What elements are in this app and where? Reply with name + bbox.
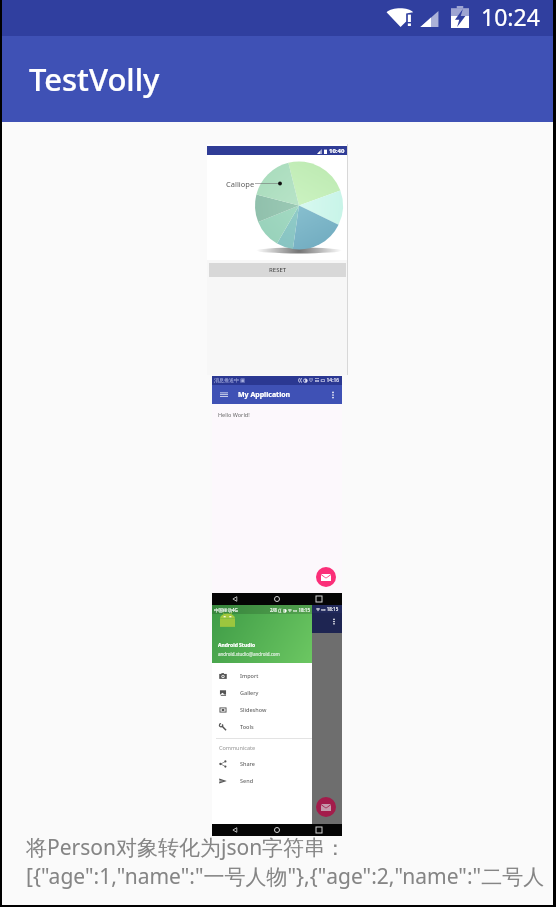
button[interactable]: Import — [212, 667, 312, 684]
staticText: ᯤ ▭ 18:15 — [316, 606, 339, 612]
other: Recents — [316, 827, 322, 833]
staticText: Tools — [240, 723, 254, 730]
staticText: RESET — [269, 266, 287, 274]
staticText: My Application — [238, 390, 291, 400]
staticText: TestVolly — [29, 58, 160, 100]
other: Recents — [316, 596, 322, 602]
staticText: Send — [240, 777, 254, 784]
staticText: 2/8 ⟨⟨ ◑ ᯤ ▭ 18:15 — [270, 607, 310, 613]
other: Home — [274, 827, 280, 833]
button[interactable]: RESET — [209, 263, 346, 277]
staticText: 将Person对象转化为json字符串： — [26, 833, 347, 862]
other: Menu — [220, 391, 228, 398]
button[interactable]: TestVolly — [2, 36, 553, 122]
other: Home — [274, 596, 280, 602]
staticText: Gallery — [240, 689, 259, 696]
staticText: android.studio@android.com — [218, 651, 280, 657]
button[interactable]: Gallery — [212, 684, 312, 701]
button[interactable]: Slideshow — [212, 701, 312, 718]
staticText: Communicate — [219, 744, 256, 751]
button[interactable]: Email — [316, 797, 336, 817]
staticText: Calliope — [226, 179, 255, 189]
button[interactable]: Send — [212, 772, 312, 789]
button[interactable]: Tools — [212, 718, 312, 735]
staticText: 消息推送中 ▣ — [214, 377, 246, 384]
staticText: Import — [240, 672, 259, 679]
other: More options — [333, 618, 335, 625]
staticText: Android Studio — [218, 642, 256, 649]
staticText: Slideshow — [240, 706, 267, 713]
other: Back — [232, 596, 238, 602]
other: Back — [232, 827, 238, 833]
staticText: Hello World! — [218, 411, 250, 418]
staticText: Share — [240, 760, 255, 767]
other: More options — [332, 391, 334, 399]
staticText: [{"age":1,"name":"一号人物"},{"age":2,"name"… — [26, 862, 545, 891]
staticText: 10:24 — [481, 1, 540, 32]
button[interactable]: Email — [316, 567, 336, 587]
staticText: ⟨⟨ ◑ ♡ ☷ ▭ 14:16 — [298, 377, 340, 384]
staticText: 10:40 — [329, 147, 345, 155]
button[interactable]: Share — [212, 755, 312, 772]
staticText: 中国移动4G — [214, 607, 238, 613]
